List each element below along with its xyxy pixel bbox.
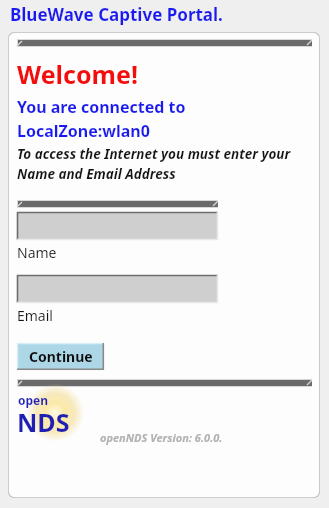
staticText: NDS bbox=[17, 405, 70, 439]
staticText: Email bbox=[17, 306, 53, 325]
staticText: Welcome! bbox=[17, 57, 138, 91]
staticText: openNDS Version: 6.0.0. bbox=[100, 430, 223, 445]
button[interactable]: Continue bbox=[17, 343, 104, 370]
staticText: Name bbox=[17, 243, 57, 262]
staticText: LocalZone:wlan0 bbox=[17, 120, 150, 142]
staticText: Continue bbox=[29, 347, 93, 366]
staticText: captive portal bbox=[18, 438, 60, 440]
staticText: BlueWave Captive Portal. bbox=[10, 3, 223, 26]
staticText: Name and Email Address bbox=[17, 165, 176, 183]
staticText: open bbox=[18, 392, 49, 408]
staticText: You are connected to bbox=[17, 96, 186, 118]
button[interactable]: Text input bbox=[17, 275, 218, 303]
button[interactable]: Text input bbox=[17, 212, 218, 240]
staticText: To access the Internet you must enter yo… bbox=[17, 145, 291, 163]
